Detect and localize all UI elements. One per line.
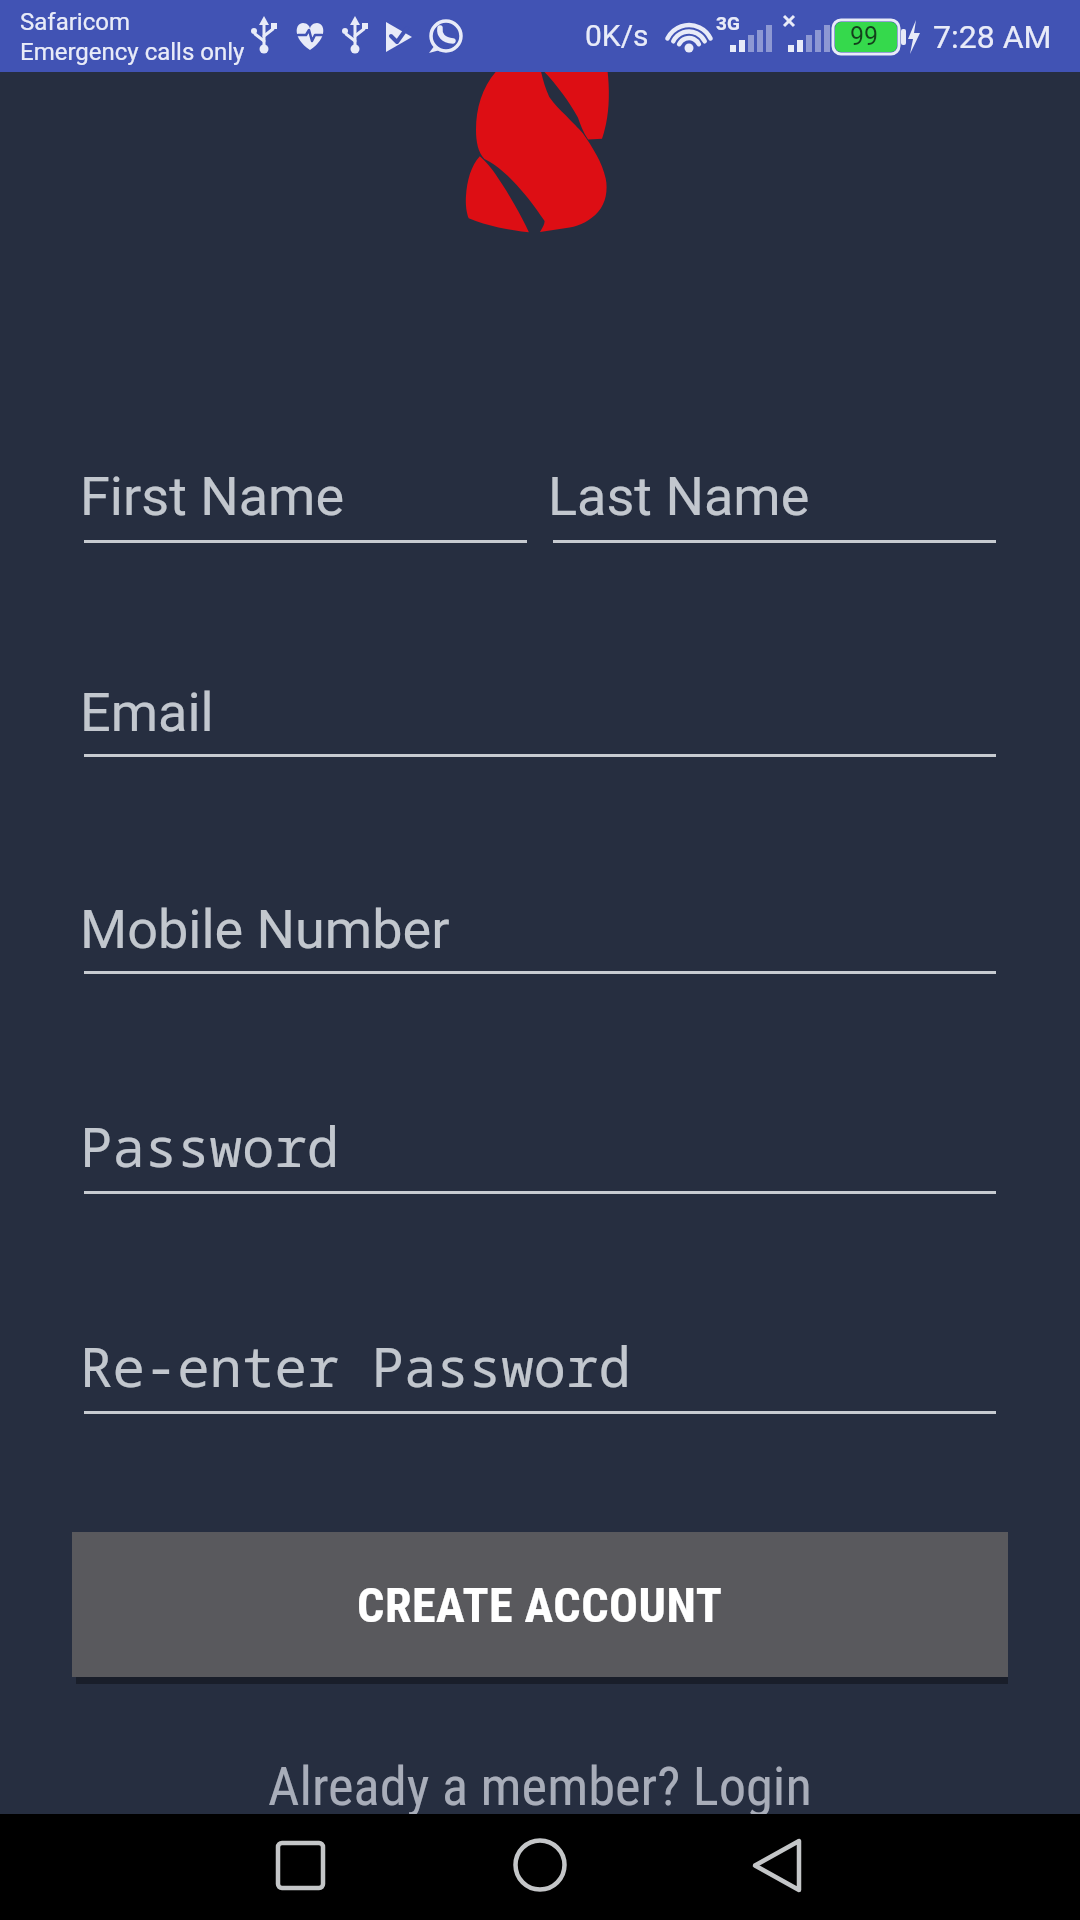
staticText: Safaricom	[20, 8, 130, 36]
staticText: CREATE ACCOUNT	[357, 1577, 723, 1633]
staticText: Re-enter Password	[80, 1329, 631, 1403]
staticText: 3G	[716, 12, 740, 34]
staticText: Mobile Number	[80, 898, 450, 961]
staticText: First Name	[80, 465, 345, 528]
staticText: 7:28 AM	[933, 18, 1052, 56]
staticText: Password	[80, 1109, 340, 1183]
staticText: Already a member? Login	[268, 1754, 812, 1814]
staticText: Last Name	[548, 465, 810, 528]
staticText: 99	[850, 22, 879, 51]
staticText: Emergency calls only	[20, 38, 245, 66]
staticText: Email	[80, 681, 214, 744]
staticText: 0K/s	[585, 18, 649, 53]
